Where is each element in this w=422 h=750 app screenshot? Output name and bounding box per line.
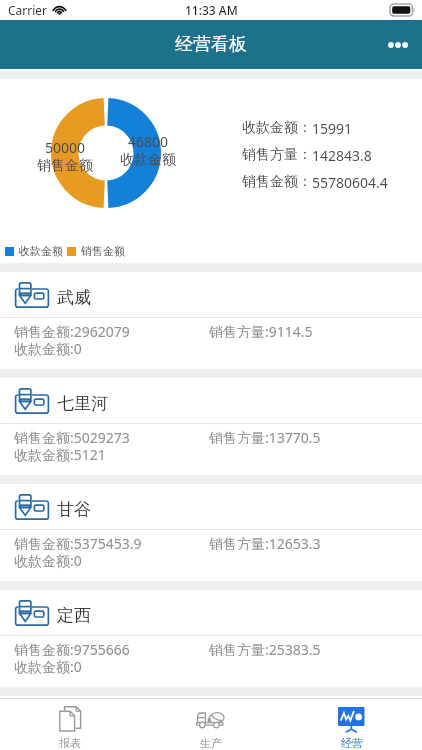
staticText: 收款金额 <box>19 244 63 258</box>
staticText: 销售金额:5029273 <box>14 428 209 444</box>
staticText: 收款金额 <box>120 151 176 169</box>
staticText: 销售金额:5375453.9 <box>14 534 209 550</box>
staticText: 销售方量:25383.5 <box>209 640 321 656</box>
staticText: 销售金额:9755666 <box>14 640 209 656</box>
staticText: 经营 <box>341 736 363 750</box>
staticText: 生产 <box>200 736 222 750</box>
staticText: 50000 <box>45 138 86 157</box>
staticText: 55780604.4 <box>312 173 388 192</box>
staticText: 销售方量:13770.5 <box>209 428 321 444</box>
staticText: 销售金额:2962079 <box>14 322 209 338</box>
button[interactable]: 生产 <box>140 699 281 750</box>
staticText: 销售方量:9114.5 <box>209 322 313 338</box>
button[interactable]: 七里河 <box>0 378 422 475</box>
staticText: Carrier <box>8 2 48 18</box>
staticText: 甘谷 <box>57 499 91 520</box>
button[interactable]: 甘谷 <box>0 484 422 581</box>
staticText: 收款金额:0 <box>14 551 82 570</box>
staticText: 11:33 AM <box>185 2 238 18</box>
staticText: 46800 <box>128 132 169 151</box>
button[interactable]: 经营 <box>281 699 422 750</box>
staticText: 销售金额 <box>81 244 125 258</box>
staticText: 销售金额： <box>242 173 312 191</box>
button[interactable]: 报表 <box>0 699 140 750</box>
staticText: 15991 <box>312 119 353 138</box>
button[interactable]: 武威 <box>0 272 422 369</box>
staticText: 收款金额:0 <box>14 657 82 676</box>
staticText: 销售金额 <box>37 157 93 175</box>
staticText: 定西 <box>57 605 91 626</box>
staticText: 报表 <box>59 736 81 750</box>
staticText: 收款金额:0 <box>14 339 82 358</box>
staticText: 七里河 <box>57 393 108 414</box>
button[interactable]: 定西 <box>0 590 422 687</box>
staticText: 收款金额:5121 <box>14 445 106 464</box>
staticText: 142843.8 <box>312 146 372 165</box>
staticText: 武威 <box>57 287 91 308</box>
staticText: 经营看板 <box>175 33 247 56</box>
staticText: 销售方量： <box>242 146 312 164</box>
staticText: 收款金额： <box>242 119 312 137</box>
staticText: 销售方量:12653.3 <box>209 534 321 550</box>
button[interactable]: More options <box>374 20 422 69</box>
